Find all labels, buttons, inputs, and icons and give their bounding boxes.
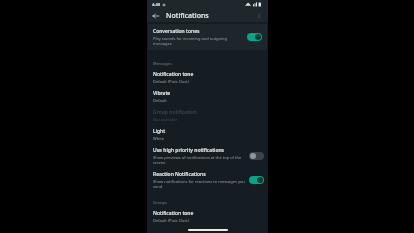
staticText: Use high priority notifications <box>153 147 225 154</box>
staticText: Not available <box>153 117 178 122</box>
button[interactable]: Light <box>147 125 268 144</box>
staticText: Notification tone <box>153 210 194 217</box>
button[interactable]: More options <box>254 11 264 21</box>
staticText: Show previews of notifications at the to… <box>153 155 245 165</box>
button[interactable]: Use high priority notifications <box>147 144 268 168</box>
staticText: Notifications <box>166 11 209 21</box>
staticText: 4:48 <box>152 2 160 7</box>
staticText: Messages <box>153 61 172 66</box>
button[interactable]: Notification tone <box>147 207 268 226</box>
staticText: Notification tone <box>153 71 194 78</box>
button[interactable]: Off <box>249 152 264 160</box>
staticText: Group notification <box>153 109 197 116</box>
button[interactable]: On <box>247 33 262 41</box>
button[interactable]: Conversation tones <box>148 24 267 50</box>
button[interactable]: Reaction Notifications <box>147 168 268 192</box>
button[interactable]: Notification tone <box>147 68 268 87</box>
button[interactable]: On <box>249 176 264 184</box>
staticText: Conversation tones <box>153 28 200 35</box>
staticText: Light <box>153 128 166 135</box>
staticText: Groups <box>153 200 167 205</box>
button[interactable]: Back <box>151 11 161 21</box>
staticText: Default <box>153 98 167 103</box>
staticText: Reaction Notifications <box>153 171 206 178</box>
staticText: Play sounds for incoming and outgoing me… <box>153 36 243 46</box>
staticText: Vibrate <box>153 90 171 97</box>
button[interactable]: Vibrate <box>147 87 268 106</box>
staticText: White <box>153 136 164 141</box>
staticText: Default (Pixie Dust) <box>153 218 189 223</box>
staticText: Default (Pixie Dust) <box>153 79 189 84</box>
staticText: Show notifications for reactions to mess… <box>153 179 245 189</box>
